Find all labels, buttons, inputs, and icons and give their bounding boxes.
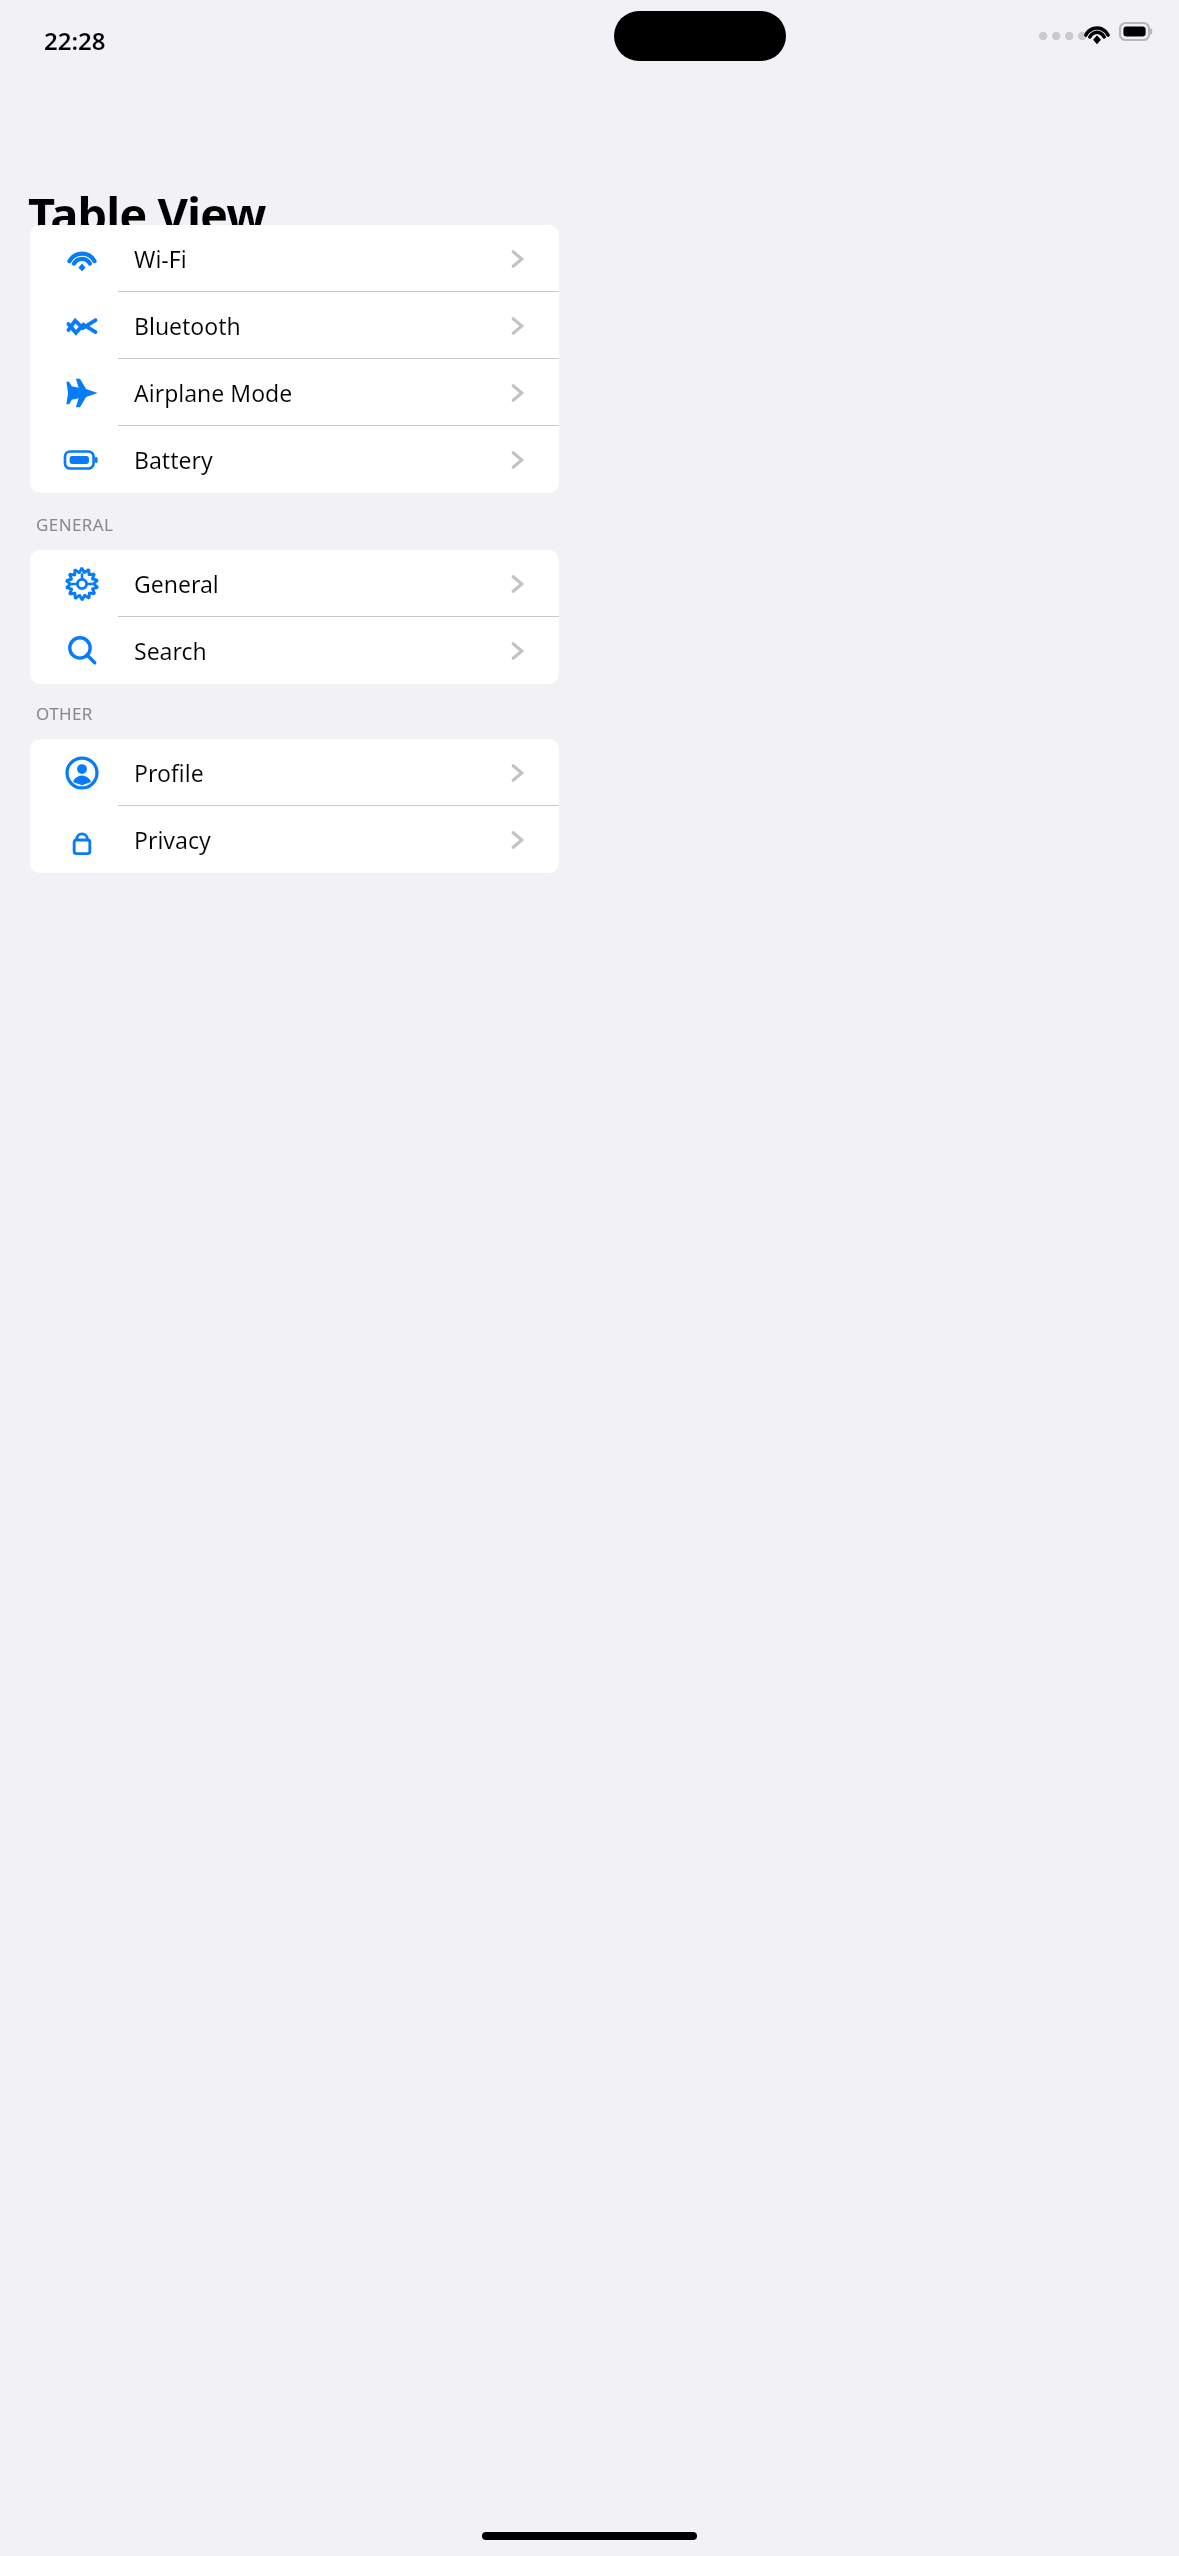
button[interactable]: Privacy	[30, 806, 559, 873]
staticText: 22:28	[44, 24, 106, 57]
staticText: Profile	[134, 757, 204, 788]
staticText: Battery	[134, 444, 213, 475]
staticText: Privacy	[134, 824, 211, 855]
button[interactable]: Battery	[30, 426, 559, 493]
button[interactable]: Wi-Fi	[30, 225, 559, 292]
staticText: Airplane Mode	[134, 377, 293, 408]
staticText: OTHER	[36, 702, 93, 725]
button[interactable]: General	[30, 550, 559, 617]
staticText: GENERAL	[36, 513, 114, 536]
staticText: Table View	[28, 182, 266, 246]
button[interactable]: Airplane Mode	[30, 359, 559, 426]
staticText: Wi-Fi	[134, 243, 187, 274]
button[interactable]: Bluetooth	[30, 292, 559, 359]
staticText: General	[134, 568, 219, 599]
staticText: Bluetooth	[134, 310, 241, 341]
staticText: Search	[134, 635, 207, 666]
button[interactable]: Search	[30, 617, 559, 684]
button[interactable]: Profile	[30, 739, 559, 806]
